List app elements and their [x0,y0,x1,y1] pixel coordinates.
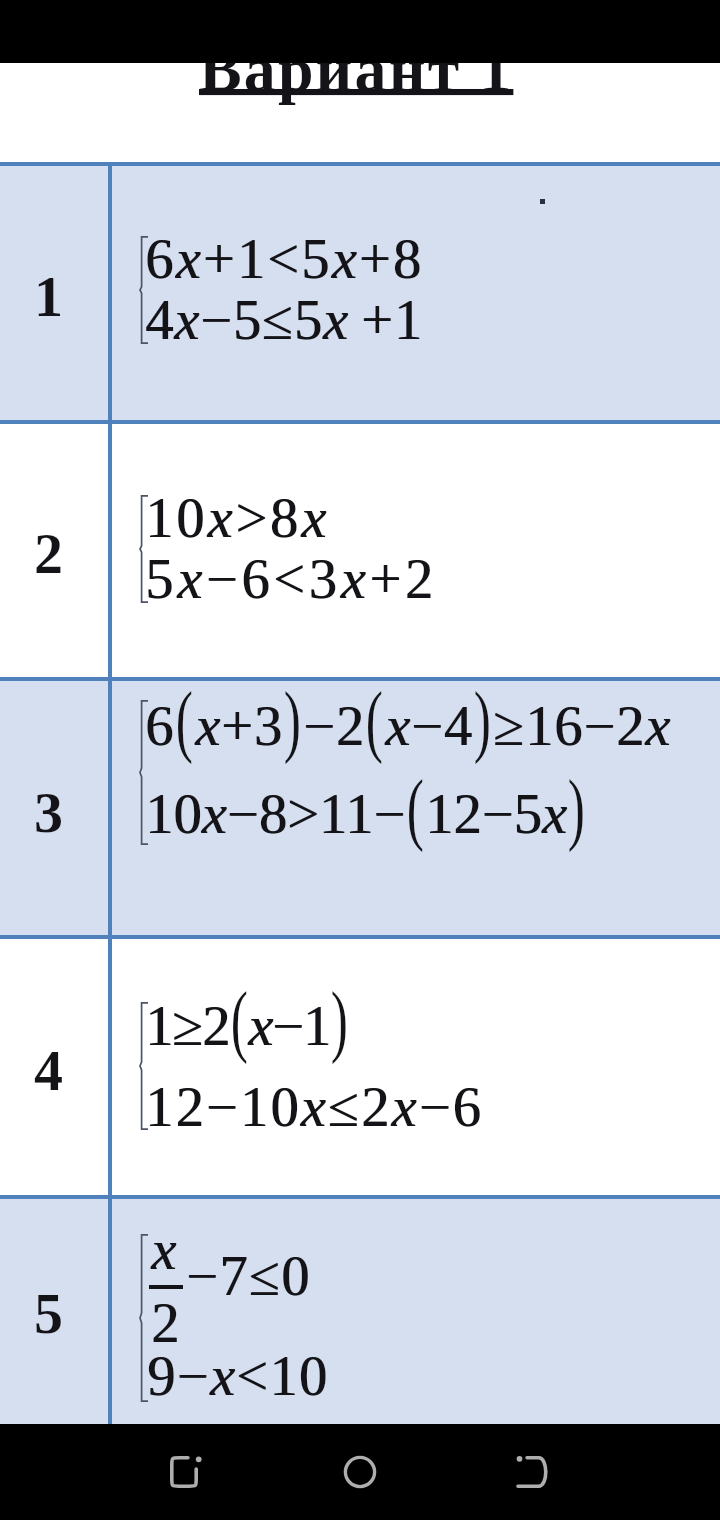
staticText: x−1 [248,995,330,1057]
staticText: ( [176,676,194,764]
button[interactable]: Back [486,1424,582,1520]
staticText: x−1 [249,995,331,1057]
staticText: 5x−6<3x+2 [145,548,437,610]
staticText: x+3 [195,695,283,757]
staticText: ( [231,976,247,1064]
staticText: 1≥2 [145,995,230,1057]
staticText: 12−10x≤2x−6 [145,1076,484,1138]
staticText: ) [474,676,492,764]
staticText: ( [407,764,424,852]
staticText: 12−5x [426,783,568,845]
staticText: −2 [303,695,365,757]
staticText: 2 [34,521,63,585]
staticText: 2 [152,1292,182,1354]
staticText: 1≥2 [146,995,231,1057]
staticText: −7≤0 [186,1245,311,1307]
staticText: x [151,1219,178,1281]
staticText: ) [568,764,585,852]
staticText: 5 [34,1281,63,1345]
button[interactable]: Recent apps [138,1424,234,1520]
staticText: x−4 [386,695,474,757]
staticText: ) [331,976,347,1064]
staticText: 3 [34,780,63,844]
staticText: 10x−8>11− [146,783,407,845]
staticText: 12−10x≤2x−6 [146,1076,485,1138]
staticText: 6x+1<5x+8 [145,228,424,290]
staticText: 2 [151,1292,181,1354]
staticText: 10x−8>11− [145,783,406,845]
staticText: 9−x<10 [148,1345,330,1407]
staticText: −7≤0 [187,1245,312,1307]
staticText: 12−5x [425,783,567,845]
staticText: Вариант 1 [199,34,514,105]
staticText: 9−x<10 [147,1345,329,1407]
staticText: −2 [304,695,366,757]
staticText: ) [284,676,302,764]
staticText: x−4 [385,695,473,757]
staticText: ≥16−2x [494,695,673,757]
staticText: 4x−5≤5x +1 [145,289,423,351]
staticText: ≥16−2x [493,695,672,757]
staticText: x [152,1219,179,1281]
button[interactable] [0,1195,720,1424]
staticText: 6x+1<5x+8 [146,228,425,290]
staticText: 10x>8x [146,487,330,549]
staticText: 4 [34,1038,63,1102]
staticText: x+3 [196,695,284,757]
staticText: 10x>8x [145,487,329,549]
staticText: ( [366,676,384,764]
staticText: 1 [34,264,63,328]
button[interactable] [0,162,720,420]
staticText: 5x−6<3x+2 [146,548,438,610]
staticText: 6 [145,695,175,757]
button[interactable]: Home [312,1424,408,1520]
staticText: 6 [146,695,176,757]
button[interactable] [0,677,720,935]
staticText: 4x−5≤5x +1 [146,289,424,351]
